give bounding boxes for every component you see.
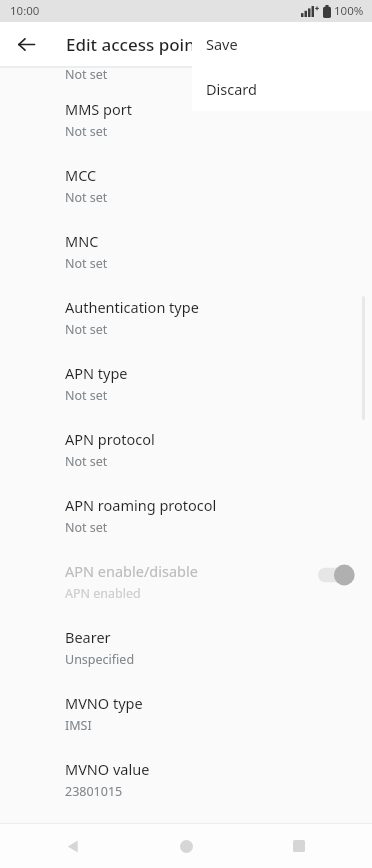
staticText: Not set (65, 321, 108, 338)
button[interactable]: APN enable toggle (318, 562, 358, 588)
button[interactable]: Home (166, 826, 206, 866)
staticText: MMS port (65, 99, 132, 119)
staticText: Not set (65, 519, 108, 536)
staticText: Edit access point (66, 33, 202, 56)
button[interactable]: MCC (0, 152, 372, 218)
button[interactable]: MVNO type (0, 680, 372, 746)
button[interactable]: MVNO value (0, 746, 372, 812)
button[interactable]: APN roaming protocol (0, 482, 372, 548)
staticText: Save (206, 34, 238, 54)
staticText: APN protocol (65, 429, 155, 449)
button[interactable]: Bearer (0, 614, 372, 680)
staticText: MVNO value (65, 759, 150, 779)
staticText: APN enabled (65, 585, 141, 602)
staticText: Discard (206, 79, 257, 99)
staticText: IMSI (65, 717, 92, 734)
button[interactable]: Back (53, 826, 93, 866)
button[interactable]: Authentication type (0, 284, 372, 350)
button[interactable]: Discard (192, 66, 372, 111)
staticText: Not set (65, 123, 108, 140)
staticText: 10:00 (10, 3, 40, 19)
staticText: APN enable/disable (65, 561, 198, 581)
button[interactable]: APN type (0, 350, 372, 416)
staticText: Authentication type (65, 297, 199, 317)
button[interactable]: Back (6, 24, 46, 64)
staticText: 100% (334, 3, 364, 19)
staticText: Not set (65, 255, 108, 272)
staticText: Not set (65, 189, 108, 206)
button[interactable]: Save (192, 22, 372, 66)
staticText: MCC (65, 165, 97, 185)
staticText: MVNO type (65, 693, 143, 713)
staticText: APN type (65, 363, 128, 383)
button[interactable]: Recents (279, 826, 319, 866)
staticText: Unspecified (65, 651, 135, 668)
staticText: Not set (65, 387, 108, 404)
staticText: MNC (65, 231, 99, 251)
button[interactable]: APN protocol (0, 416, 372, 482)
staticText: Not set (65, 453, 108, 470)
button[interactable]: MNC (0, 218, 372, 284)
button[interactable]: APN enable/disable (0, 548, 372, 614)
button[interactable]: MMS port (0, 86, 372, 152)
staticText: Not set (65, 66, 108, 83)
staticText: APN roaming protocol (65, 495, 217, 515)
staticText: Bearer (65, 627, 111, 647)
staticText: 23801015 (65, 783, 123, 800)
